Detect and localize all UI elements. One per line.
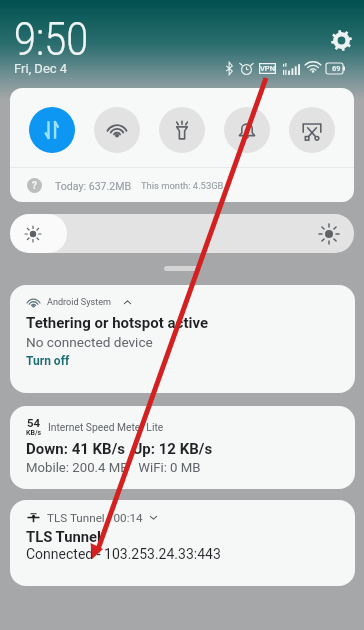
- button[interactable]: 54: [10, 406, 355, 489]
- staticText: Today: 637.2MB: [55, 180, 132, 192]
- button[interactable]: Flashlight: [159, 107, 205, 153]
- staticText: Internet Speed Meter Lite: [48, 421, 164, 433]
- button[interactable]: TLS Tunnel · 00:14: [10, 500, 355, 586]
- staticText: No connected device: [26, 334, 153, 350]
- staticText: 69: [332, 64, 341, 73]
- staticText: TLS Tunnel: [26, 528, 101, 545]
- staticText: Turn off: [26, 354, 70, 368]
- button[interactable]: Screenshot: [289, 107, 335, 153]
- staticText: VPN: [260, 64, 275, 73]
- staticText: 54: [27, 416, 41, 429]
- staticText: Mobile: 200.4 MB WiFi: 0 MB: [26, 460, 201, 475]
- staticText: 9:50: [14, 12, 89, 66]
- button[interactable]: Do not disturb: [224, 107, 270, 153]
- button[interactable]: Android System: [10, 285, 355, 393]
- staticText: This month: 4.53GB: [141, 180, 224, 191]
- button[interactable]: Mobile data: [29, 107, 75, 153]
- button[interactable]: [10, 214, 354, 253]
- button[interactable]: Turn off: [26, 354, 70, 368]
- staticText: Connected - 103.253.24.33:443: [26, 546, 221, 562]
- staticText: Tethering or hotspot active: [26, 314, 209, 332]
- button[interactable]: Wi-Fi: [94, 107, 140, 153]
- staticText: TLS Tunnel · 00:14: [47, 511, 143, 525]
- staticText: Fri, Dec 4: [14, 61, 68, 76]
- button[interactable]: Settings: [330, 29, 352, 51]
- staticText: Android System: [47, 297, 112, 308]
- staticText: KB/s: [26, 429, 42, 437]
- staticText: ?: [32, 180, 37, 192]
- staticText: Down: 41 KB/s Up: 12 KB/s: [26, 440, 213, 458]
